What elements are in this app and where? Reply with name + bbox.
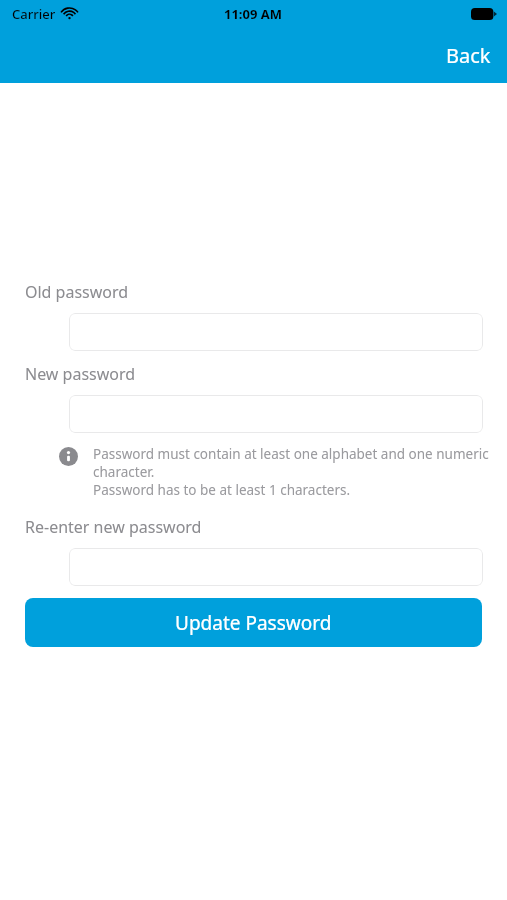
- staticText: Re-enter new password: [25, 516, 202, 538]
- button[interactable]: Old password: [69, 313, 483, 351]
- staticText: 11:09 AM: [224, 5, 283, 23]
- button[interactable]: New password: [69, 395, 483, 433]
- staticText: Update Password: [175, 610, 332, 636]
- staticText: Old password: [25, 281, 129, 303]
- staticText: Back: [446, 42, 491, 69]
- staticText: New password: [25, 363, 136, 385]
- button[interactable]: Back: [430, 34, 507, 77]
- button[interactable]: Re-enter new password: [69, 548, 483, 586]
- button[interactable]: Update Password: [25, 598, 482, 647]
- staticText: Carrier: [12, 5, 56, 23]
- staticText: Password must contain at least one alpha…: [93, 445, 489, 499]
